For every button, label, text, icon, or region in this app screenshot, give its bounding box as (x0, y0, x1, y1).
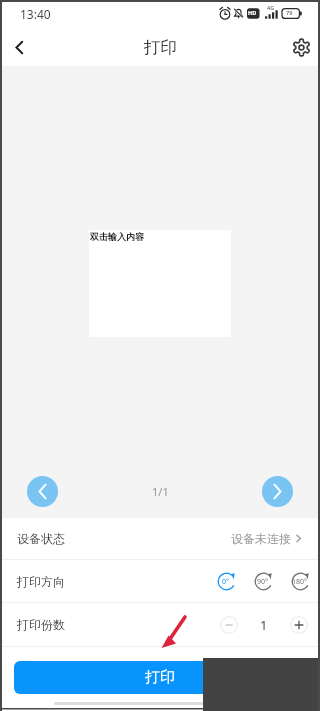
button[interactable]: Rotate 0 degrees (216, 571, 237, 592)
button[interactable]: Rotate 180 degrees (290, 571, 311, 592)
button[interactable]: Decrease (220, 616, 238, 634)
button[interactable]: Next page (262, 476, 293, 507)
button[interactable]: 设备状态 (0, 518, 320, 559)
staticText: HD (248, 9, 257, 16)
staticText: 设备未连接 (231, 531, 291, 546)
staticText: 打印 (145, 668, 175, 687)
staticText: 1 (260, 616, 268, 634)
staticText: 打印方向 (17, 574, 65, 589)
staticText: 双击输入内容 (90, 231, 144, 242)
staticText: 180° (292, 577, 308, 587)
staticText: 打印 (144, 37, 177, 58)
staticText: 1/1 (152, 484, 169, 499)
button[interactable]: Rotate 90 degrees (253, 571, 274, 592)
button[interactable]: Back (0, 28, 38, 66)
staticText: 13:40 (20, 6, 51, 22)
button[interactable]: 打印 (14, 661, 306, 694)
staticText: 4G (267, 4, 275, 11)
button[interactable]: 双击输入内容 (89, 230, 231, 337)
staticText: 0° (222, 577, 229, 587)
staticText: 79 (286, 9, 293, 16)
button[interactable]: Increase (290, 616, 308, 634)
staticText: 90° (257, 577, 269, 587)
staticText: 设备状态 (17, 531, 65, 546)
button[interactable]: Previous page (27, 476, 58, 507)
button[interactable]: Settings (282, 28, 320, 66)
staticText: 打印份数 (17, 617, 65, 632)
